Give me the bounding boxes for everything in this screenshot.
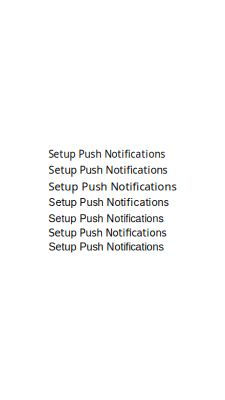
staticText: Setup Push Notifications: [48, 179, 176, 194]
staticText: Setup Push Notifications: [48, 147, 165, 161]
staticText: Setup Push Notifications: [48, 227, 166, 239]
staticText: Setup Push Notifications: [48, 210, 163, 225]
staticText: Setup Push Notifications: [48, 241, 163, 253]
staticText: Setup Push Notifications: [48, 196, 168, 208]
staticText: Setup Push Notifications: [48, 163, 167, 177]
